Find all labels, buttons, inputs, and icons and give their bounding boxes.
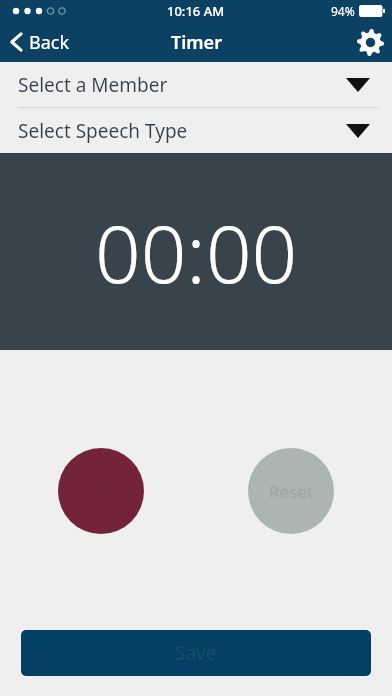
staticText: Back <box>29 30 70 55</box>
staticText: Save <box>175 640 217 666</box>
button[interactable]: Select a Member <box>0 62 392 107</box>
staticText: Timer <box>171 30 222 55</box>
staticText: 00:00 <box>95 197 298 306</box>
staticText: Select Speech Type <box>18 118 188 144</box>
staticText: 10:16 AM <box>167 2 225 20</box>
staticText: Reset <box>269 480 314 503</box>
button[interactable]: Back <box>0 22 82 62</box>
button[interactable]: Reset <box>248 448 334 534</box>
staticText: 94% <box>331 3 355 19</box>
button[interactable]: Select Speech Type <box>0 108 392 153</box>
staticText: Select a Member <box>18 72 168 98</box>
button[interactable]: Start <box>58 448 144 534</box>
button[interactable]: Settings <box>348 22 392 62</box>
button[interactable]: Save <box>21 630 371 676</box>
